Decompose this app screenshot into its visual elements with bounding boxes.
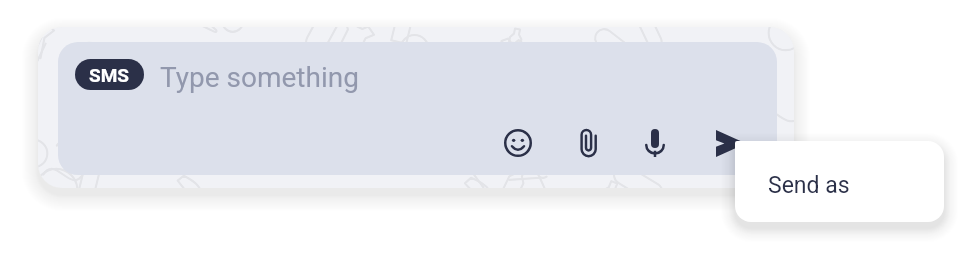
button[interactable]: SMS bbox=[75, 59, 144, 90]
button[interactable]: Send as bbox=[735, 141, 944, 222]
staticText: Type something bbox=[160, 61, 359, 94]
button[interactable]: Insert emoji bbox=[496, 121, 540, 165]
staticText: Send as bbox=[768, 172, 850, 199]
button[interactable]: Attach file bbox=[567, 121, 611, 165]
button[interactable]: Record voice message bbox=[633, 121, 677, 165]
button[interactable]: Send message bbox=[709, 121, 753, 165]
staticText: SMS bbox=[89, 64, 130, 86]
